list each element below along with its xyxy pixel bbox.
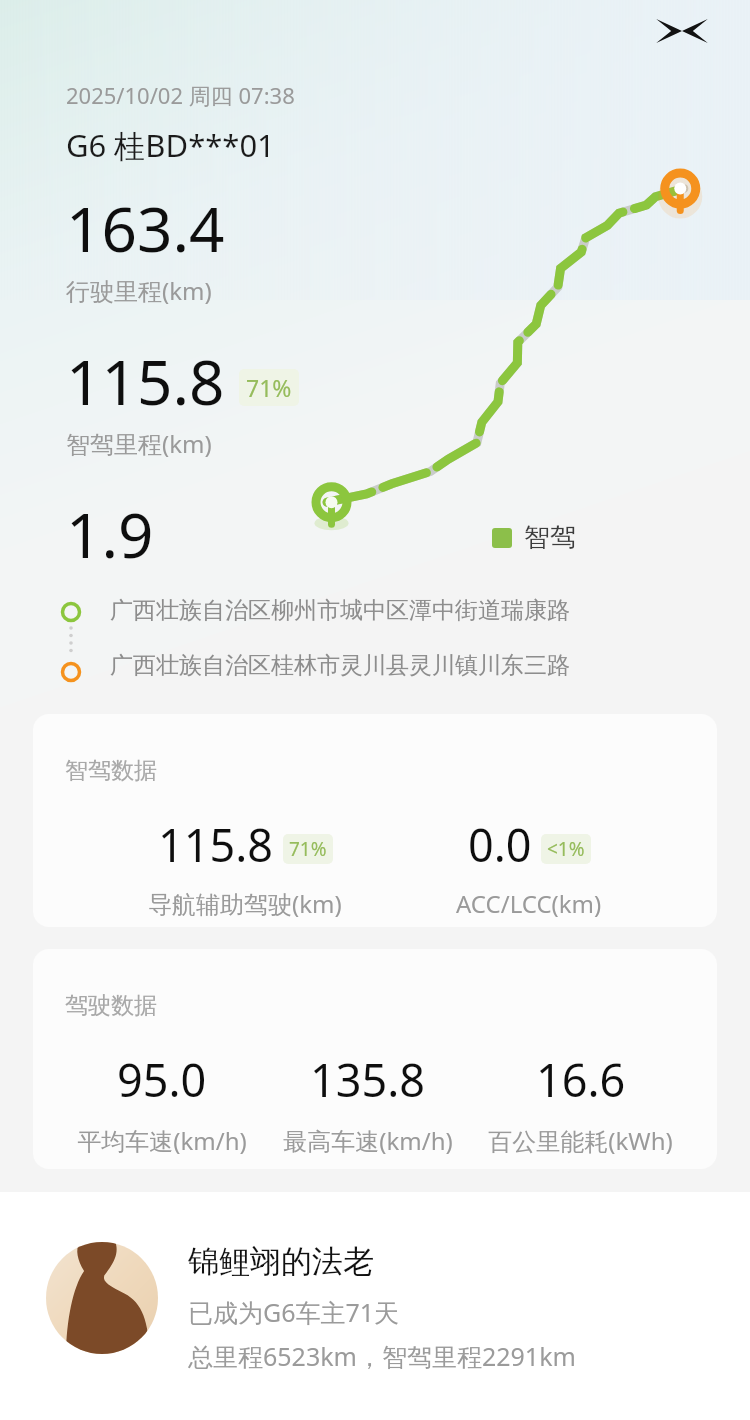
staticText: 135.8	[310, 1049, 426, 1110]
button[interactable]: 锦鲤翊的法老	[0, 1192, 750, 1420]
button[interactable]: XPeng logo	[654, 11, 710, 51]
staticText: 智驾数据	[65, 756, 157, 785]
button[interactable]: 智驾数据	[33, 714, 717, 927]
staticText: 2025/10/02 周四 07:38	[66, 80, 295, 110]
staticText: 锦鲤翊的法老	[188, 1242, 374, 1281]
staticText: 驾驶数据	[65, 991, 157, 1020]
staticText: 总里程6523km，智驾里程2291km	[188, 1339, 576, 1373]
staticText: 百公里能耗(kWh)	[488, 1124, 673, 1157]
staticText: 95.0	[117, 1049, 207, 1110]
staticText: 71%	[246, 372, 292, 403]
staticText: 71%	[289, 836, 327, 862]
staticText: 行驶里程(km)	[66, 274, 212, 307]
staticText: 导航辅助驾驶(km)	[148, 887, 342, 920]
staticText: ACC/LCC(km)	[456, 887, 602, 920]
staticText: 广西壮族自治区柳州市城中区潭中街道瑞康路	[110, 596, 570, 625]
staticText: 已成为G6车主71天	[188, 1295, 400, 1329]
staticText: 平均车速(km/h)	[77, 1124, 247, 1157]
staticText: 16.6	[536, 1049, 626, 1110]
staticText: 163.4	[66, 186, 225, 270]
staticText: <1%	[547, 836, 585, 862]
staticText: 广西壮族自治区桂林市灵川县灵川镇川东三路	[110, 651, 570, 680]
staticText: G6 桂BD***01	[66, 124, 275, 166]
staticText: 115.8	[158, 814, 274, 875]
staticText: 最高车速(km/h)	[283, 1124, 453, 1157]
staticText: 1.9	[66, 492, 154, 576]
staticText: 智驾里程(km)	[66, 427, 212, 460]
staticText: 115.8	[66, 339, 225, 423]
staticText: 智驾	[524, 521, 576, 554]
staticText: 0.0	[468, 814, 532, 875]
button[interactable]: 驾驶数据	[33, 949, 717, 1169]
